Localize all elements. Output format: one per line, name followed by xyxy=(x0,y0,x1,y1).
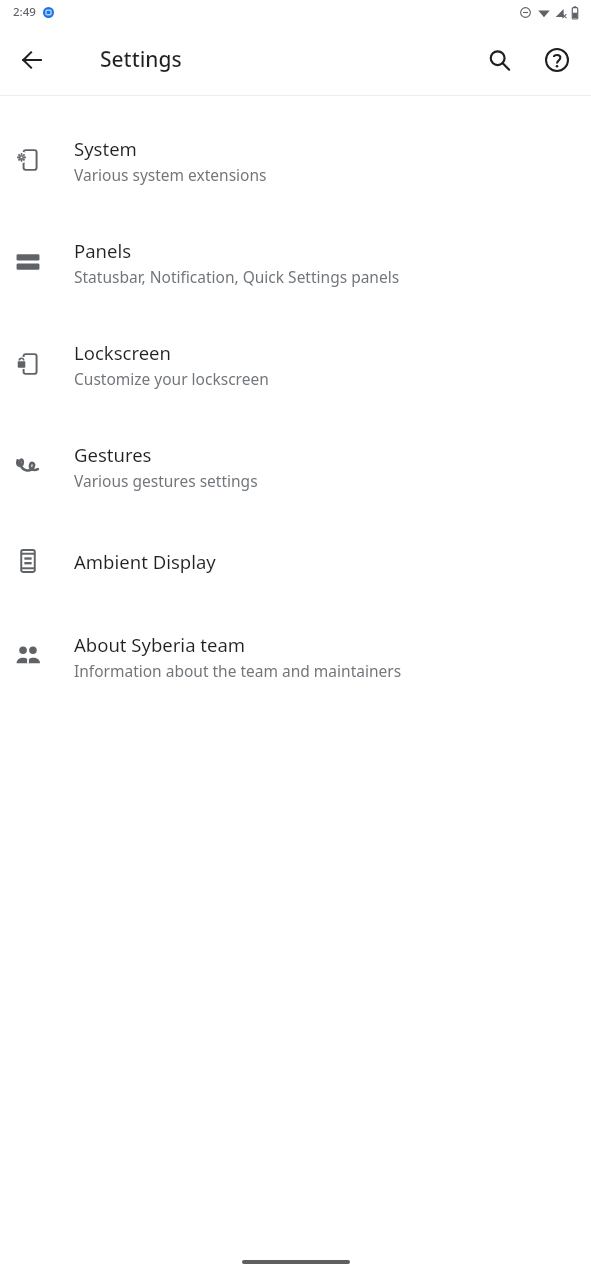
staticText: Panels xyxy=(74,238,132,263)
button[interactable]: Back xyxy=(8,36,56,84)
staticText: Settings xyxy=(100,45,182,74)
staticText: 2:49 xyxy=(13,4,36,20)
staticText: About Syberia team xyxy=(74,632,246,657)
staticText: Various gestures settings xyxy=(74,470,258,491)
staticText: System xyxy=(74,136,137,161)
button[interactable]: Search xyxy=(475,36,523,84)
button[interactable]: Help xyxy=(533,36,581,84)
button[interactable]: Lockscreen xyxy=(0,313,591,415)
button[interactable]: Panels xyxy=(0,211,591,313)
staticText: Information about the team and maintaine… xyxy=(74,660,402,681)
staticText: Customize your lockscreen xyxy=(74,368,269,389)
button[interactable]: About Syberia team xyxy=(0,605,591,707)
staticText: Statusbar, Notification, Quick Settings … xyxy=(74,266,400,287)
staticText: Ambient Display xyxy=(74,549,216,574)
staticText: Gestures xyxy=(74,442,152,467)
button[interactable]: Ambient Display xyxy=(0,517,591,605)
staticText: Various system extensions xyxy=(74,164,267,185)
staticText: Lockscreen xyxy=(74,340,171,365)
button[interactable]: System xyxy=(0,109,591,211)
button[interactable]: Gestures xyxy=(0,415,591,517)
